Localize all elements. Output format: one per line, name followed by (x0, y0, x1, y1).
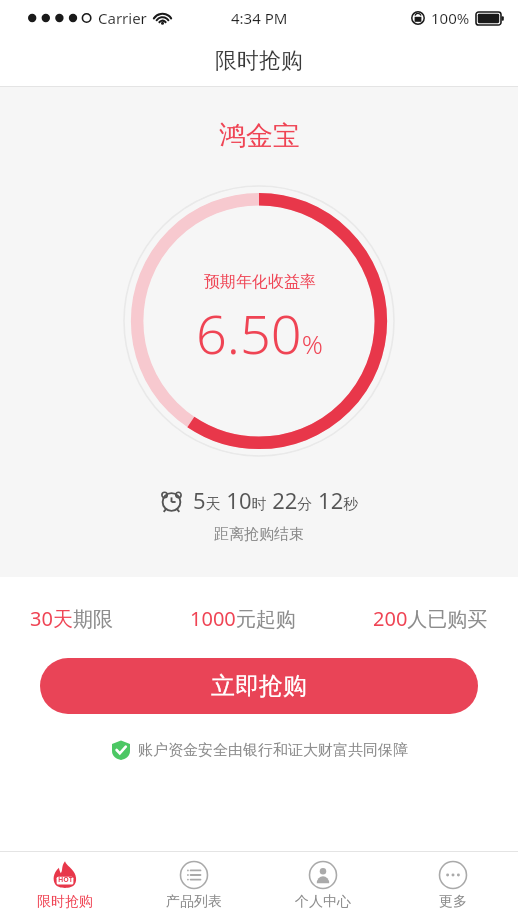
staticText: 4:34 PM (231, 8, 288, 28)
staticText: 200人已购买 (373, 605, 488, 632)
button[interactable]: 限时抢购 (0, 852, 129, 920)
staticText: HOT (58, 875, 73, 885)
staticText: 1000元起购 (190, 605, 296, 632)
staticText: 更多 (439, 893, 467, 911)
staticText: 个人中心 (295, 893, 351, 911)
other: 限时抢购 (50, 860, 80, 890)
staticText: 距离抢购结束 (214, 525, 304, 544)
other: 更多 (438, 860, 468, 890)
staticText: 5天 10时 22分 12秒 (193, 485, 359, 515)
button[interactable]: 立即抢购 (40, 658, 478, 714)
staticText: 产品列表 (166, 893, 222, 911)
button[interactable]: 更多 (388, 852, 518, 920)
staticText: 立即抢购 (211, 671, 307, 701)
staticText: 30天期限 (30, 605, 113, 632)
other: 产品列表 (179, 860, 209, 890)
staticText: 6.50% (196, 296, 323, 370)
staticText: 100% (431, 8, 470, 28)
button[interactable]: 个人中心 (258, 852, 388, 920)
button[interactable]: 产品列表 (129, 852, 258, 920)
staticText: 限时抢购 (215, 47, 303, 75)
other: 个人中心 (308, 860, 338, 890)
staticText: 鸿金宝 (219, 119, 300, 153)
staticText: Carrier (98, 8, 147, 28)
staticText: 账户资金安全由银行和证大财富共同保障 (138, 741, 408, 760)
staticText: 预期年化收益率 (204, 272, 316, 292)
staticText: 限时抢购 (37, 893, 93, 911)
